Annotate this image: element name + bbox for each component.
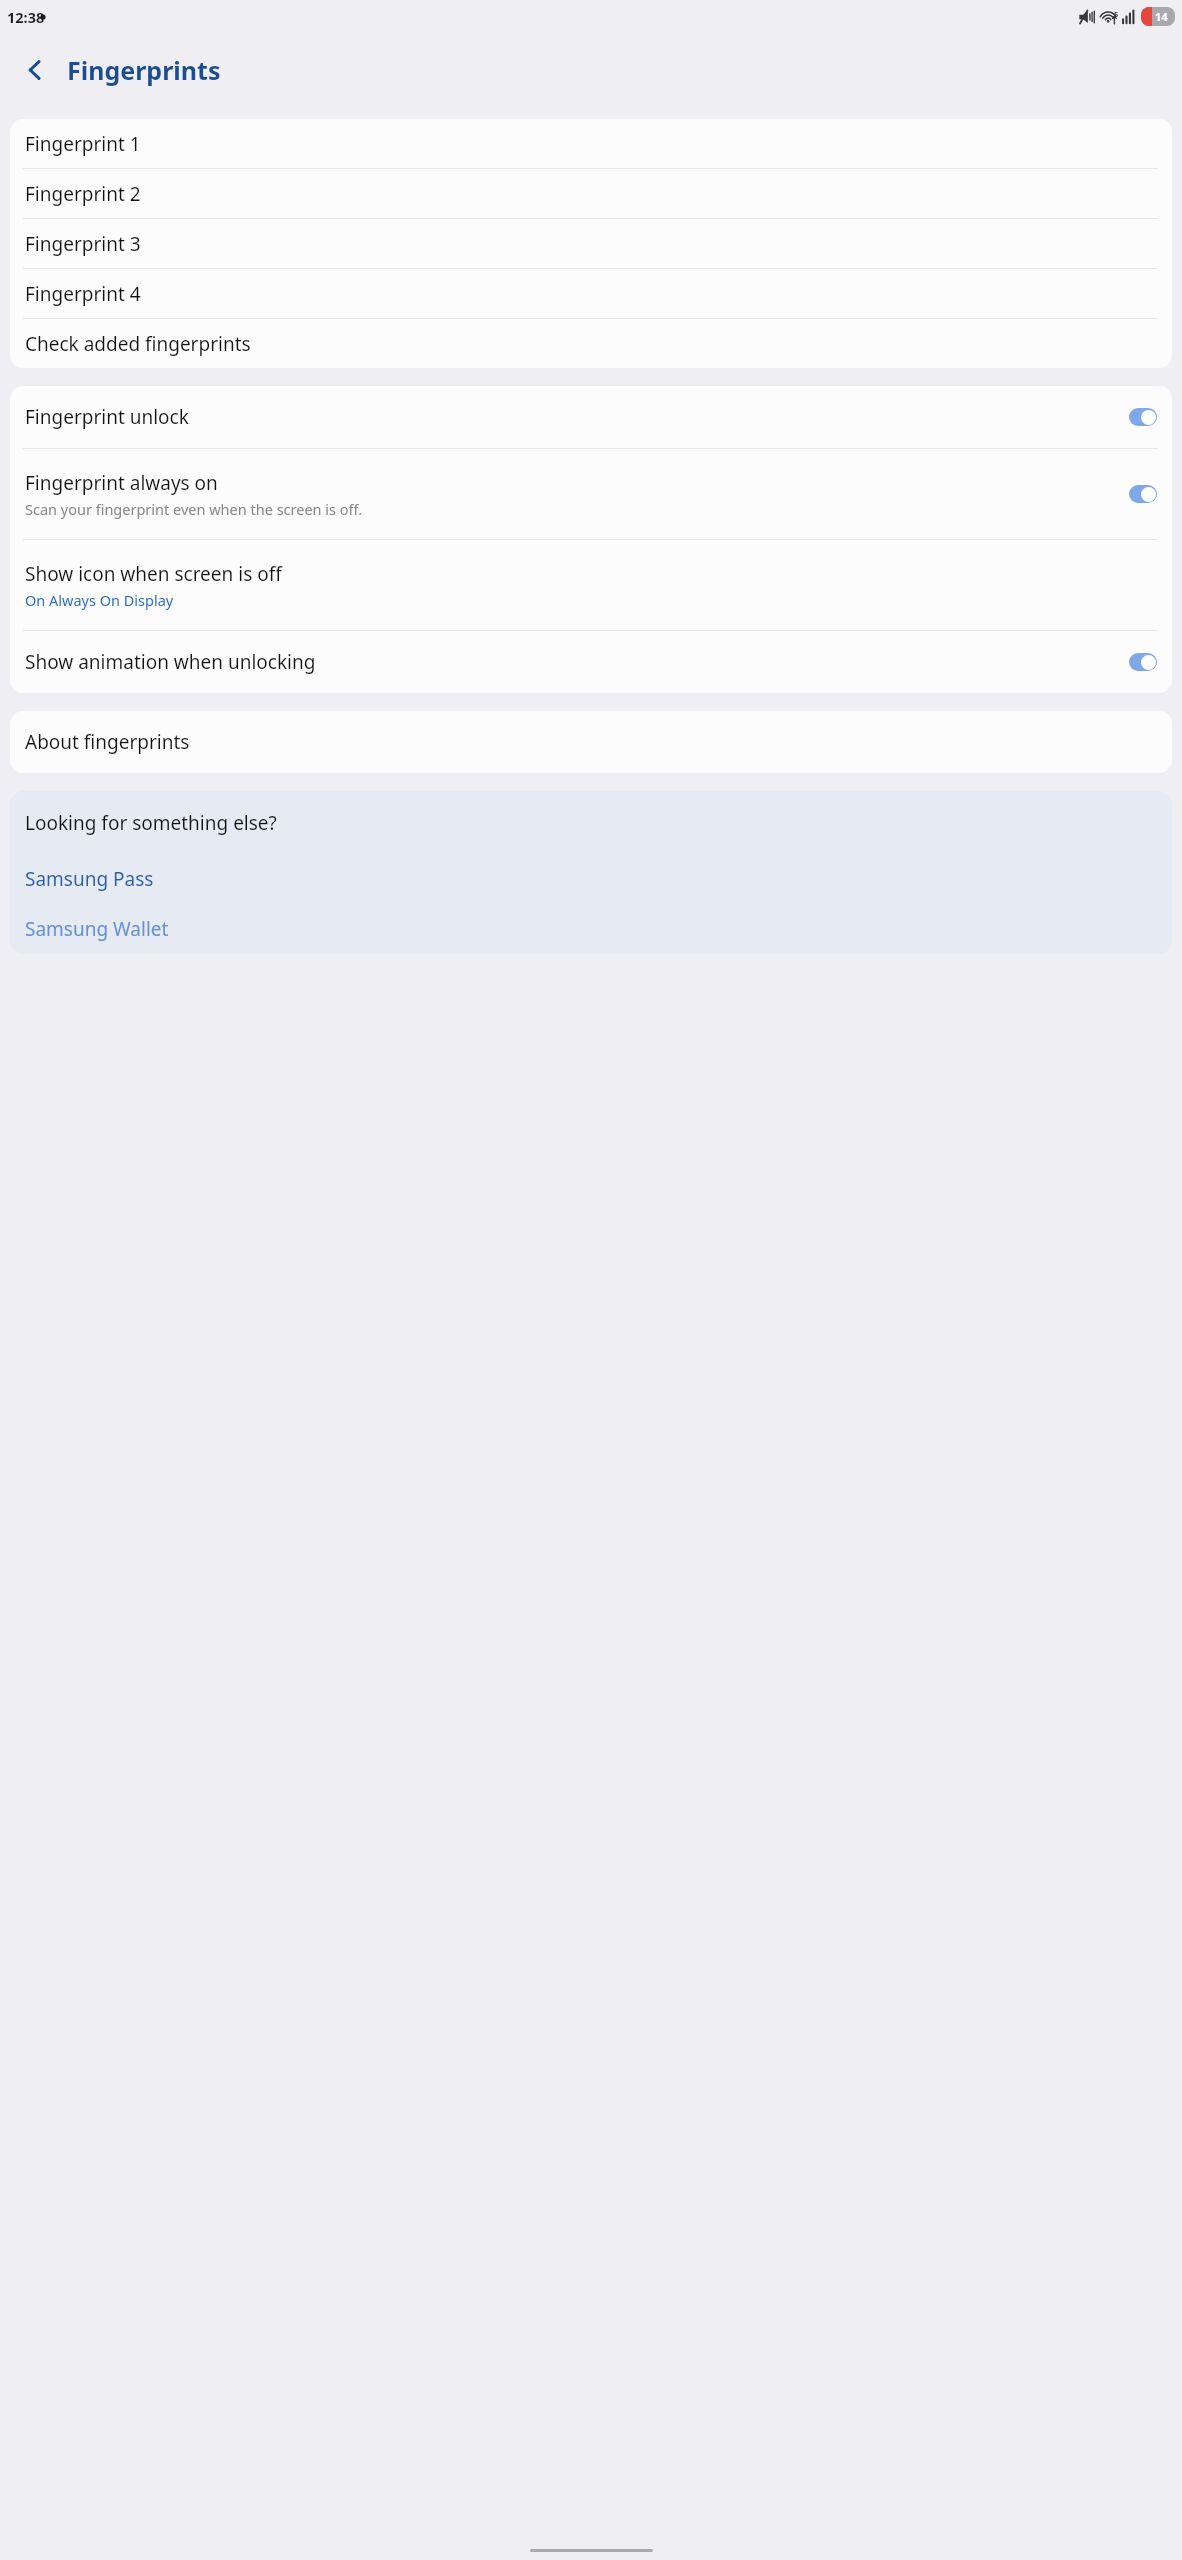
button[interactable]: Fingerprint 3 [10,219,1172,268]
staticText: 12:38 [7,7,45,27]
button[interactable]: Show icon when screen is off [10,540,1172,630]
staticText: Fingerprint always on [25,470,218,496]
staticText: Fingerprint 3 [25,231,141,257]
button[interactable]: Check added fingerprints [10,319,1172,368]
staticText: Fingerprint 2 [25,181,141,207]
staticText: Fingerprint 4 [25,281,141,307]
staticText: Looking for something else? [25,810,277,836]
staticText: Show animation when unlocking [25,649,316,675]
staticText: Samsung Wallet [25,916,169,942]
button[interactable]: Fingerprint 1 [10,119,1172,168]
staticText: 5 [1114,9,1119,19]
staticText: Fingerprints [67,53,221,87]
button[interactable]: About fingerprints [10,711,1172,773]
staticText: 14 [1155,9,1168,24]
button[interactable]: Back [13,48,57,92]
button[interactable]: Toggle setting [1129,485,1157,503]
staticText: Fingerprint 1 [25,131,141,157]
button[interactable]: Samsung Pass [10,854,1172,904]
button[interactable]: Fingerprint unlock [10,386,1172,448]
staticText: On Always On Display [25,590,174,610]
button[interactable]: Toggle setting [1129,653,1157,671]
button[interactable]: Samsung Wallet [10,904,1172,954]
button[interactable]: Fingerprint 2 [10,169,1172,218]
button[interactable]: Toggle setting [1129,408,1157,426]
staticText: Fingerprint unlock [25,404,189,430]
staticText: Samsung Pass [25,866,154,892]
button[interactable]: Show animation when unlocking [10,631,1172,693]
staticText: Check added fingerprints [25,331,251,357]
staticText: Show icon when screen is off [25,561,282,587]
button[interactable]: Fingerprint always on [10,449,1172,539]
staticText: About fingerprints [25,729,190,755]
button[interactable]: Fingerprint 4 [10,269,1172,318]
staticText: Scan your fingerprint even when the scre… [25,499,363,519]
